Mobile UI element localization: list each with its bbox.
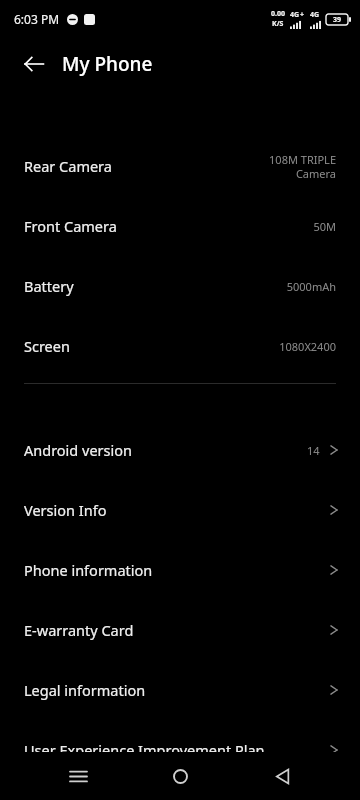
button[interactable]: Back [258, 752, 306, 800]
button[interactable]: Home [156, 752, 204, 800]
button[interactable]: Android version [0, 420, 360, 480]
staticText: Front Camera [24, 216, 313, 236]
button[interactable]: User Experience Improvement Plan [0, 720, 360, 780]
staticText: Screen [24, 336, 279, 356]
staticText: 39 [333, 15, 342, 25]
staticText: 6:03 PM [14, 11, 60, 27]
staticText: 50M [313, 219, 336, 234]
button[interactable]: E-warranty Card [0, 600, 360, 660]
staticText: My Phone [62, 51, 153, 77]
staticText: 1080X2400 [279, 339, 336, 354]
staticText: 108M TRIPLE Camera [269, 152, 336, 181]
button[interactable]: Screen [0, 316, 360, 376]
staticText: E-warranty Card [24, 620, 330, 640]
button[interactable]: Phone information [0, 540, 360, 600]
staticText: 4G [290, 10, 300, 20]
staticText: Phone information [24, 560, 330, 580]
button[interactable]: Front Camera [0, 196, 360, 256]
staticText: Rear Camera [24, 156, 269, 176]
staticText: 4G [310, 10, 320, 20]
button[interactable]: Version Info [0, 480, 360, 540]
button[interactable]: Battery [0, 256, 360, 316]
staticText: Version Info [24, 500, 330, 520]
staticText: Android version [24, 440, 307, 460]
button[interactable]: Recent apps [54, 752, 102, 800]
button[interactable]: Back [14, 44, 54, 84]
staticText: User Experience Improvement Plan [24, 740, 330, 760]
staticText: 5000mAh [286, 279, 336, 294]
staticText: 0.00 [271, 9, 285, 19]
staticText: + [300, 10, 305, 20]
staticText: Battery [24, 276, 286, 296]
staticText: K/S [272, 19, 284, 29]
staticText: 14 [307, 443, 320, 458]
button[interactable]: Legal information [0, 660, 360, 720]
staticText: Legal information [24, 680, 330, 700]
button[interactable]: Rear Camera [0, 136, 360, 196]
